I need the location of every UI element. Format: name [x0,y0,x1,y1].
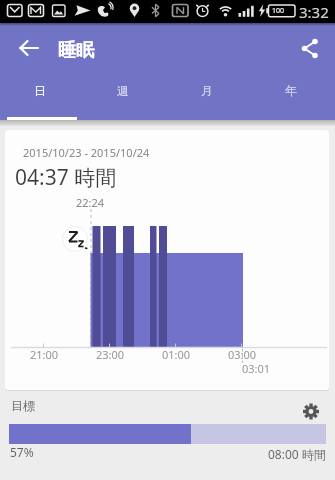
button[interactable] [12,32,44,64]
staticText: 22:24 [76,195,105,210]
staticText: 03:00 [228,347,257,362]
button[interactable] [9,424,326,444]
staticText: 03:01 [242,361,271,376]
button[interactable] [298,34,324,60]
button[interactable]: 日 [0,64,81,117]
staticText: 年 [285,83,297,98]
staticText: 3:32 [299,2,329,22]
staticText: 100 [272,6,285,16]
staticText: 21:00 [30,347,59,362]
staticText: 08:00 時間 [268,446,326,462]
staticText: 日 [34,83,46,98]
staticText: 23:00 [96,347,125,362]
staticText: 月 [201,83,213,98]
button[interactable]: 年 [249,64,333,117]
staticText: 04:37 時間 [15,163,117,192]
button[interactable]: 週 [81,64,165,117]
staticText: 目標 [11,398,35,413]
staticText: 01:00 [162,347,191,362]
staticText: 57% [10,444,34,460]
staticText: 週 [117,83,129,98]
staticText: 睡眠 [58,39,94,62]
staticText: 2015/10/23 - 2015/10/24 [23,145,150,160]
button[interactable]: 月 [165,64,249,117]
button[interactable] [300,400,323,423]
